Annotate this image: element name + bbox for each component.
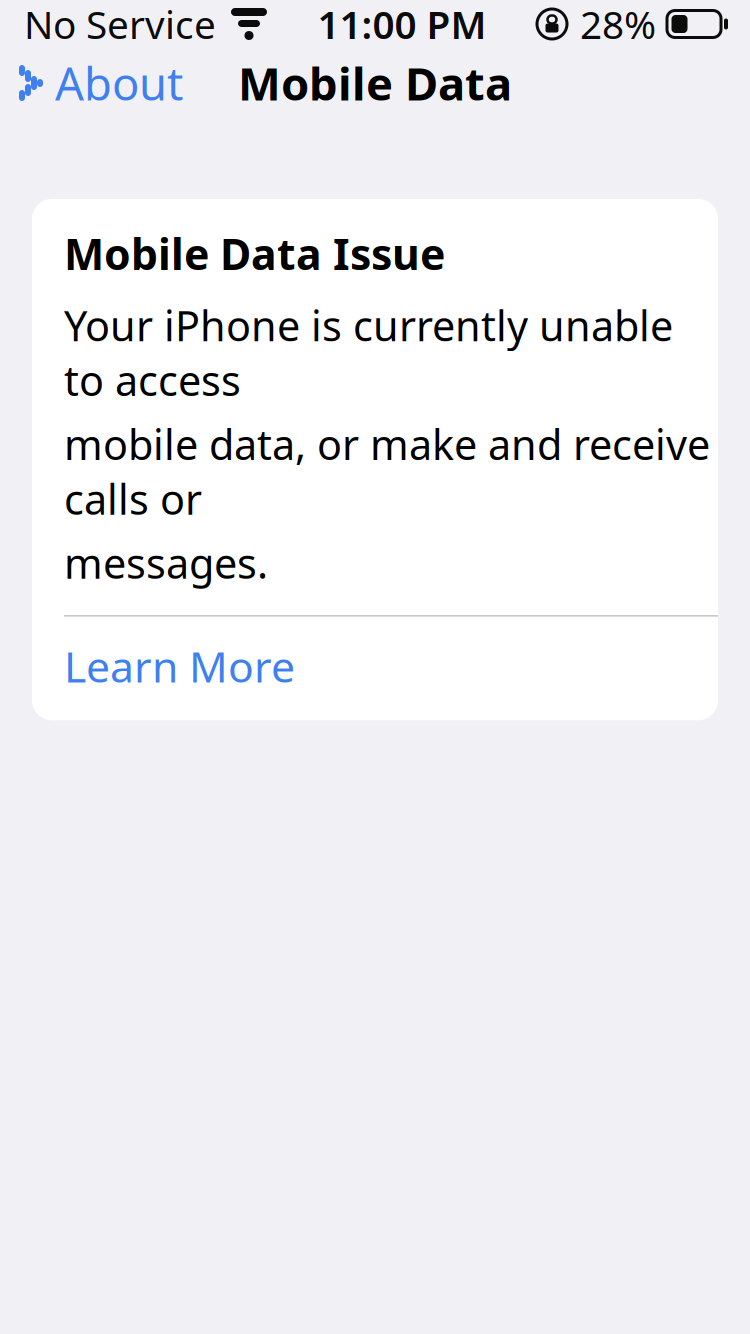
staticText: Mobile Data Issue: [64, 225, 445, 282]
staticText: About: [55, 53, 183, 113]
staticText: 11:00 PM: [317, 0, 486, 50]
staticText: No Service: [24, 0, 216, 50]
button[interactable]: About: [0, 44, 199, 122]
staticText: Your iPhone is currently unable to acces…: [64, 298, 673, 407]
staticText: Learn More: [64, 638, 295, 694]
staticText: messages.: [64, 535, 268, 590]
staticText: mobile data, or make and receive calls o…: [64, 416, 710, 526]
staticText: Mobile Data: [238, 53, 512, 113]
staticText: 28%: [580, 0, 656, 50]
button[interactable]: Learn More: [32, 617, 718, 720]
